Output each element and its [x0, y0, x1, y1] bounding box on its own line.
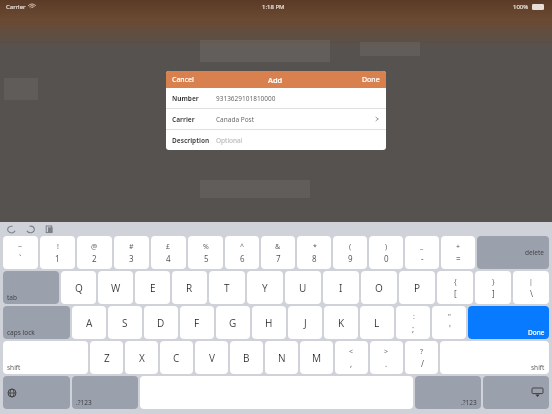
button[interactable]: X: [125, 341, 158, 374]
button[interactable]: .?123: [415, 376, 481, 409]
button[interactable]: ~: [3, 236, 38, 269]
button[interactable]: E: [135, 271, 170, 304]
button[interactable]: @: [77, 236, 112, 269]
staticText: N: [278, 351, 286, 365]
staticText: 3: [129, 253, 134, 264]
button[interactable]: Change keyboard: [3, 376, 70, 409]
button[interactable]: |: [513, 271, 549, 304]
button[interactable]: A: [72, 306, 106, 339]
staticText: _: [420, 242, 424, 252]
button[interactable]: delete: [477, 236, 549, 269]
staticText: B: [243, 351, 250, 365]
button[interactable]: {: [437, 271, 473, 304]
staticText: P: [414, 281, 421, 295]
button[interactable]: .?123: [72, 376, 138, 409]
staticText: 8: [312, 253, 317, 264]
button[interactable]: (: [333, 236, 367, 269]
button[interactable]: tab: [3, 271, 59, 304]
button[interactable]: Undo: [6, 224, 17, 235]
button[interactable]: S: [108, 306, 142, 339]
staticText: ~: [18, 242, 23, 252]
staticText: delete: [525, 248, 545, 257]
staticText: -: [421, 253, 424, 264]
staticText: Q: [75, 281, 83, 295]
button[interactable]: Z: [90, 341, 123, 374]
staticText: *: [313, 242, 317, 252]
button[interactable]: <: [335, 341, 368, 374]
button[interactable]: L: [360, 306, 394, 339]
button[interactable]: _: [405, 236, 439, 269]
button[interactable]: !: [40, 236, 75, 269]
button[interactable]: P: [399, 271, 435, 304]
button[interactable]: ": [432, 306, 466, 339]
button[interactable]: Cancel: [166, 71, 268, 88]
button[interactable]: K: [324, 306, 358, 339]
button[interactable]: Hide keyboard: [483, 376, 549, 409]
button[interactable]: *: [297, 236, 331, 269]
staticText: X: [139, 351, 145, 365]
button[interactable]: }: [475, 271, 511, 304]
button[interactable]: Q: [61, 271, 96, 304]
button[interactable]: G: [216, 306, 250, 339]
button[interactable]: shift: [440, 341, 549, 374]
button[interactable]: Paste: [44, 224, 55, 235]
button[interactable]: J: [288, 306, 322, 339]
staticText: .?123: [76, 398, 92, 407]
button[interactable]: F: [180, 306, 214, 339]
staticText: T: [224, 281, 230, 295]
staticText: 1:18 PM: [262, 3, 285, 11]
button[interactable]: ^: [225, 236, 259, 269]
button[interactable]: B: [230, 341, 263, 374]
button[interactable]: I: [323, 271, 359, 304]
button[interactable]: D: [144, 306, 178, 339]
button[interactable]: caps lock: [3, 306, 70, 339]
staticText: Canada Post: [216, 115, 374, 124]
staticText: 9313629101810000: [216, 94, 380, 103]
staticText: 1: [55, 253, 60, 264]
staticText: !: [57, 242, 59, 252]
button[interactable]: +: [441, 236, 475, 269]
staticText: W: [111, 281, 121, 295]
button[interactable]: M: [300, 341, 333, 374]
staticText: J: [304, 316, 307, 330]
staticText: |: [529, 277, 533, 287]
staticText: ]: [492, 288, 495, 299]
button[interactable]: O: [361, 271, 397, 304]
button[interactable]: ?: [405, 341, 438, 374]
staticText: ;: [412, 323, 415, 334]
staticText: Optional: [216, 136, 380, 145]
staticText: (: [349, 242, 352, 252]
button[interactable]: T: [209, 271, 245, 304]
staticText: E: [150, 281, 156, 295]
staticText: Number: [172, 94, 216, 103]
button[interactable]: >: [370, 341, 403, 374]
button[interactable]: H: [252, 306, 286, 339]
button[interactable]: Description: [166, 130, 386, 150]
button[interactable]: %: [188, 236, 223, 269]
staticText: Y: [262, 281, 268, 295]
button[interactable]: £: [151, 236, 186, 269]
button[interactable]: W: [98, 271, 133, 304]
button[interactable]: U: [285, 271, 321, 304]
button[interactable]: C: [160, 341, 193, 374]
staticText: =: [456, 253, 461, 264]
button[interactable]: Number: [166, 88, 386, 108]
staticText: Carrier: [172, 115, 216, 124]
button[interactable]: Done: [468, 306, 549, 339]
button[interactable]: :: [396, 306, 430, 339]
staticText: shift: [531, 363, 545, 372]
button[interactable]: Done: [283, 71, 386, 88]
button[interactable]: Carrier: [166, 109, 386, 129]
button[interactable]: #: [114, 236, 149, 269]
button[interactable]: N: [265, 341, 298, 374]
button[interactable]: R: [172, 271, 207, 304]
button[interactable]: Y: [247, 271, 283, 304]
button[interactable]: Redo: [25, 224, 36, 235]
button[interactable]: &: [261, 236, 295, 269]
staticText: <: [349, 347, 354, 357]
button[interactable]: V: [195, 341, 228, 374]
button[interactable]: shift: [3, 341, 88, 374]
staticText: shift: [7, 363, 21, 372]
button[interactable]: ): [369, 236, 403, 269]
